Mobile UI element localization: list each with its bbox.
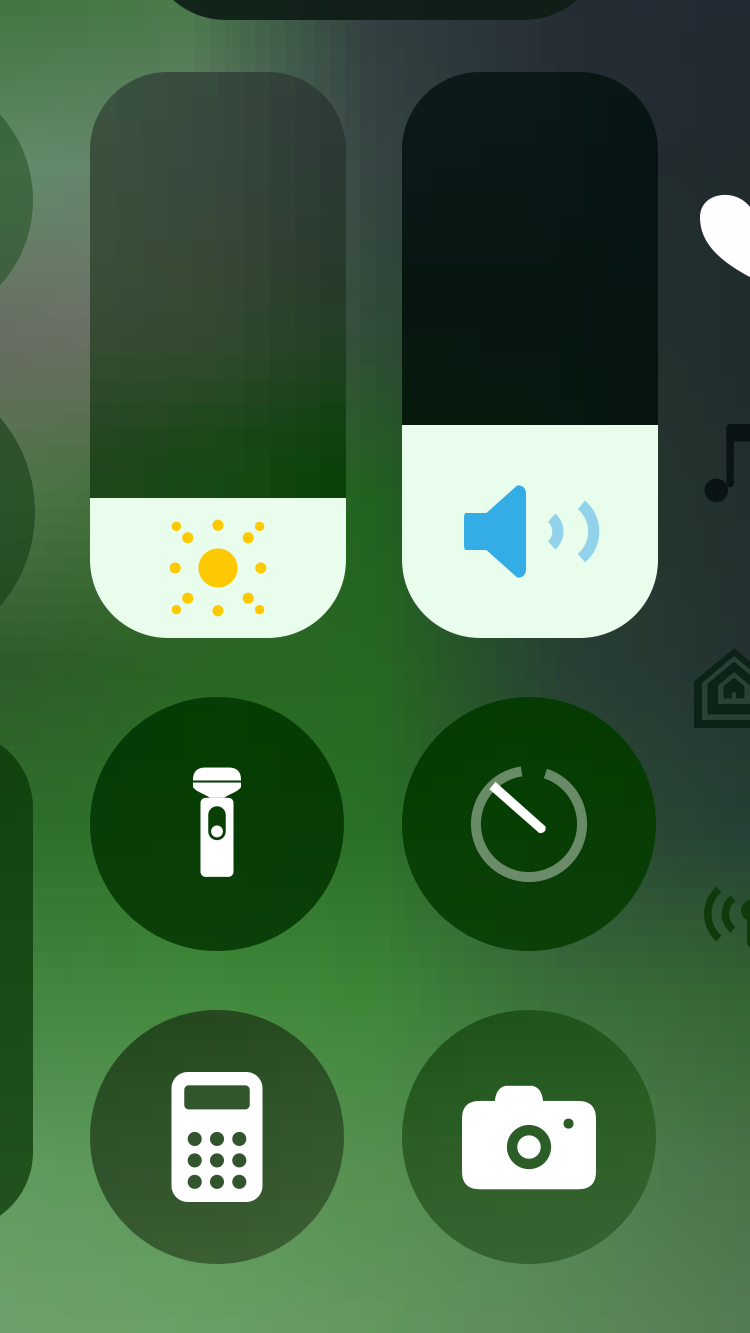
- button[interactable]: Calculator: [90, 1010, 344, 1264]
- button[interactable]: Camera: [402, 1010, 656, 1264]
- button[interactable]: Flashlight: [90, 697, 344, 951]
- button[interactable]: Home: [694, 648, 750, 728]
- button[interactable]: Screen Mirroring: [692, 878, 750, 950]
- button[interactable]: Health: [700, 190, 750, 280]
- button[interactable]: Now Playing: [700, 424, 750, 512]
- button[interactable]: Volume: [402, 72, 658, 638]
- button[interactable]: Timer: [402, 697, 656, 951]
- button[interactable]: Brightness: [90, 72, 346, 638]
